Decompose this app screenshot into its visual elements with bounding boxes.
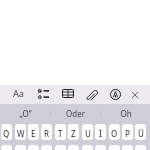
- staticText: „O“: [19, 108, 32, 119]
- button[interactable]: „O“: [0, 104, 50, 123]
- staticText: Q: [3, 128, 10, 139]
- button[interactable]: Z: [68, 124, 79, 140]
- button[interactable]: W: [15, 124, 26, 140]
- staticText: E: [31, 128, 36, 139]
- button[interactable]: Attach file: [84, 87, 100, 103]
- button[interactable]: Oder: [51, 104, 100, 123]
- button[interactable]: F: [41, 145, 52, 150]
- button[interactable]: S: [15, 145, 26, 150]
- button[interactable]: Insert table: [60, 87, 76, 103]
- button[interactable]: Markup: [107, 87, 123, 103]
- button[interactable]: Ä: [135, 145, 146, 150]
- staticText: R: [44, 128, 50, 139]
- button[interactable]: Ö: [122, 145, 133, 150]
- button[interactable]: P: [122, 124, 133, 140]
- button[interactable]: O: [109, 124, 120, 140]
- staticText: W: [17, 128, 25, 139]
- staticText: O: [111, 128, 118, 139]
- staticText: T: [58, 128, 63, 139]
- button[interactable]: Close: [127, 87, 143, 103]
- button[interactable]: K: [95, 145, 106, 150]
- button[interactable]: I: [95, 124, 106, 140]
- button[interactable]: G: [55, 145, 66, 150]
- button[interactable]: D: [28, 145, 39, 150]
- staticText: Oder: [66, 108, 85, 119]
- staticText: Ü: [138, 128, 144, 139]
- staticText: U: [85, 128, 91, 139]
- button[interactable]: Text format: [11, 87, 27, 103]
- button[interactable]: H: [68, 145, 79, 150]
- button[interactable]: L: [109, 145, 120, 150]
- button[interactable]: T: [55, 124, 66, 140]
- button[interactable]: Bulleted list: [35, 87, 51, 103]
- staticText: Aa: [13, 87, 25, 100]
- button[interactable]: R: [41, 124, 52, 140]
- button[interactable]: U: [82, 124, 93, 140]
- staticText: Oh: [120, 108, 132, 119]
- button[interactable]: Ü: [135, 124, 146, 140]
- button[interactable]: A: [1, 145, 12, 150]
- button[interactable]: J: [82, 145, 93, 150]
- staticText: Z: [71, 128, 76, 139]
- button[interactable]: Oh: [101, 104, 150, 123]
- staticText: I: [99, 128, 102, 139]
- button[interactable]: Q: [1, 124, 12, 140]
- button[interactable]: E: [28, 124, 39, 140]
- staticText: P: [125, 128, 130, 139]
